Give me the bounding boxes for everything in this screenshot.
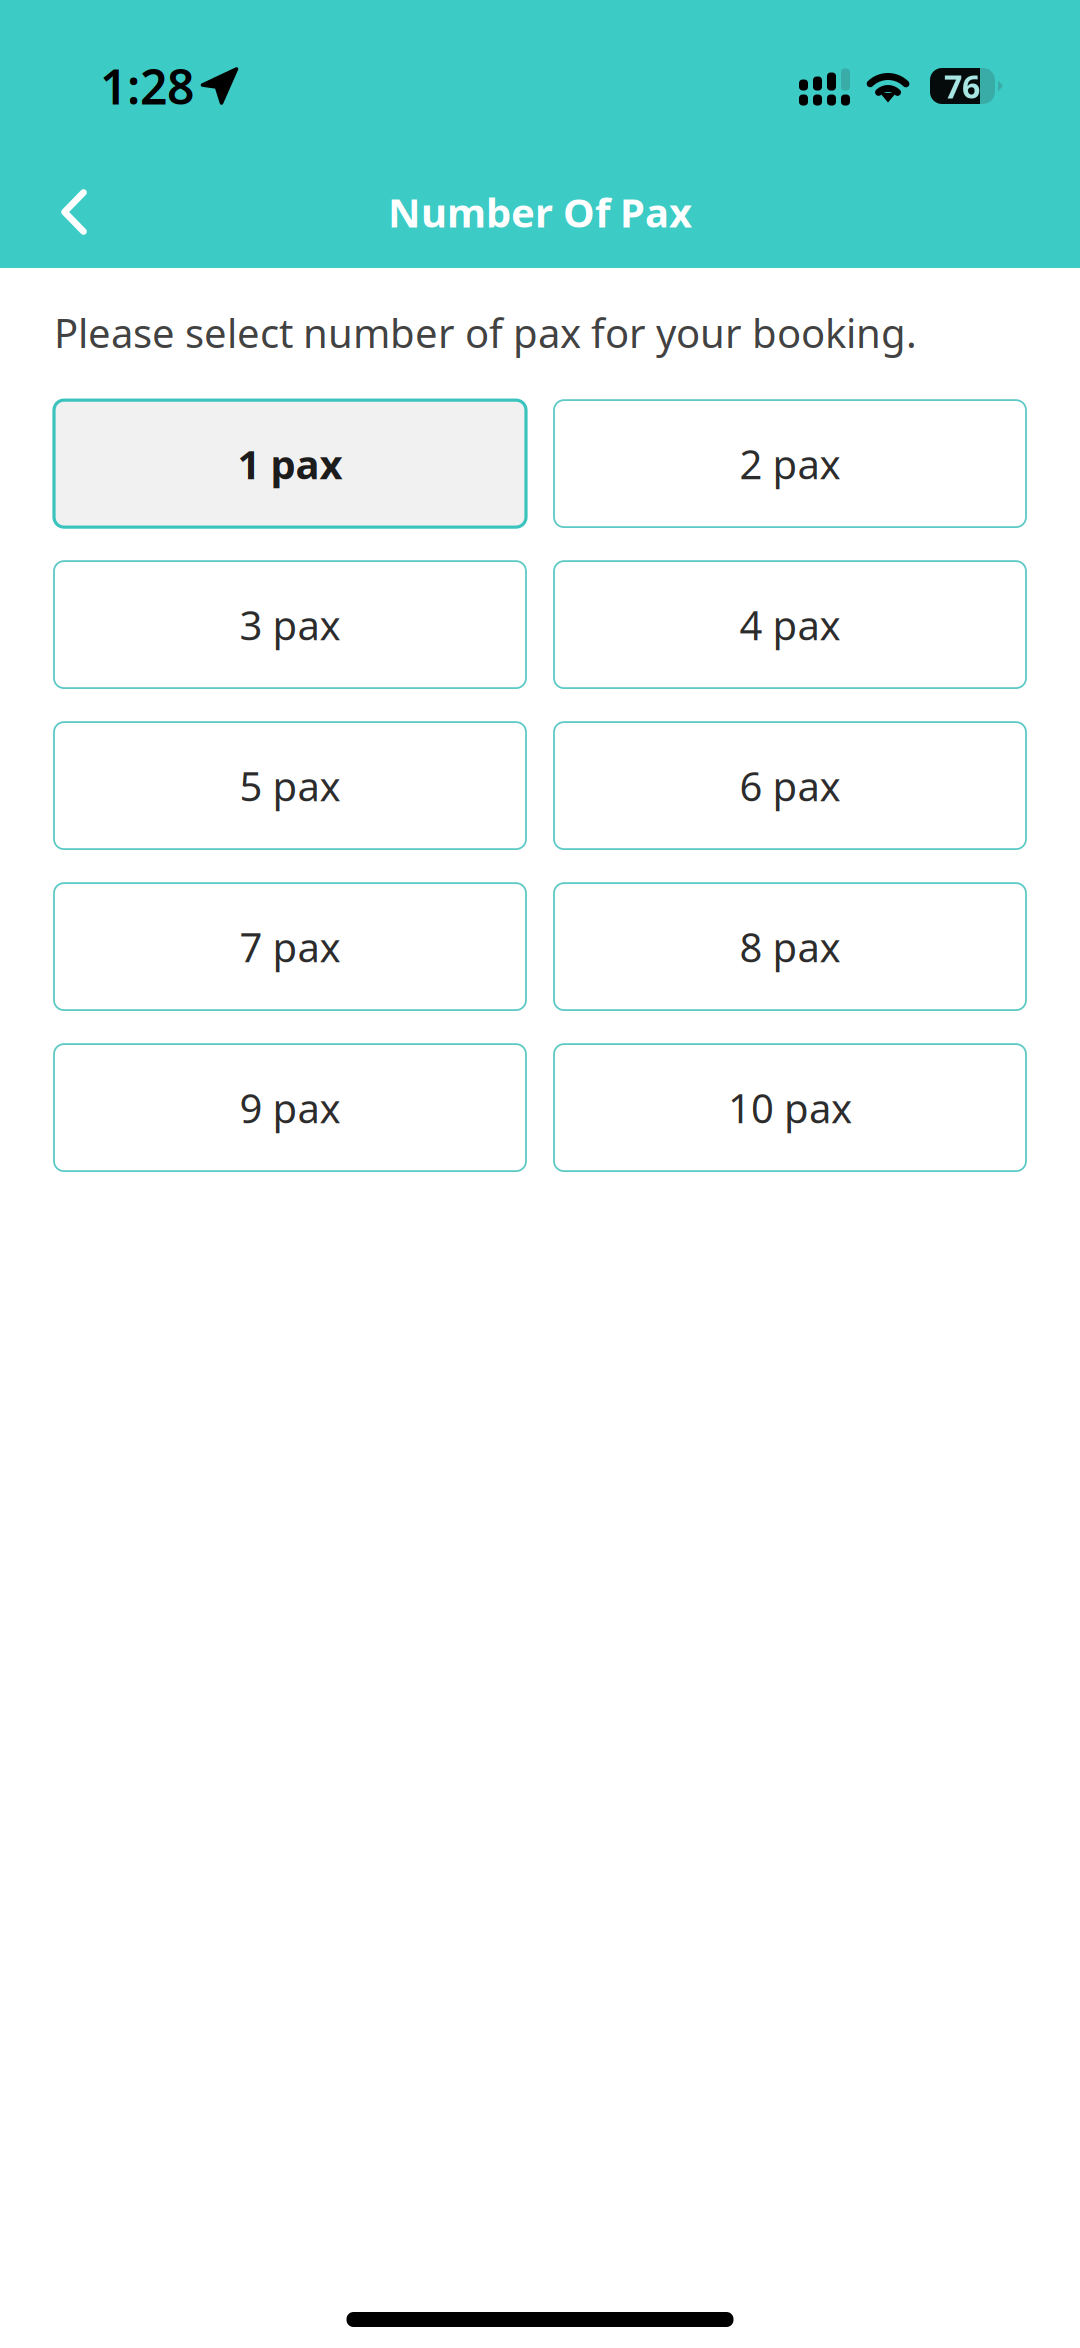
button[interactable]: 3 pax: [54, 561, 526, 688]
staticText: 2 pax: [739, 437, 840, 490]
button[interactable]: 7 pax: [54, 883, 526, 1010]
staticText: 76: [944, 65, 980, 107]
button[interactable]: 1 pax: [54, 400, 526, 527]
staticText: Number Of Pax: [388, 185, 692, 238]
staticText: 4 pax: [739, 598, 840, 651]
staticText: 5 pax: [239, 759, 340, 812]
staticText: 9 pax: [239, 1081, 340, 1134]
staticText: 8 pax: [739, 920, 840, 973]
button[interactable]: 4 pax: [554, 561, 1026, 688]
staticText: 7 pax: [239, 920, 340, 973]
button[interactable]: Back: [31, 169, 117, 255]
staticText: 6 pax: [739, 759, 840, 812]
button[interactable]: 9 pax: [54, 1044, 526, 1171]
staticText: 1 pax: [237, 437, 342, 490]
button[interactable]: 5 pax: [54, 722, 526, 849]
staticText: Please select number of pax for your boo…: [54, 306, 917, 359]
button[interactable]: 2 pax: [554, 400, 1026, 527]
button[interactable]: 8 pax: [554, 883, 1026, 1010]
staticText: 10 pax: [728, 1081, 852, 1134]
staticText: 1:28: [100, 54, 194, 118]
button[interactable]: 6 pax: [554, 722, 1026, 849]
button[interactable]: 10 pax: [554, 1044, 1026, 1171]
staticText: 3 pax: [239, 598, 340, 651]
